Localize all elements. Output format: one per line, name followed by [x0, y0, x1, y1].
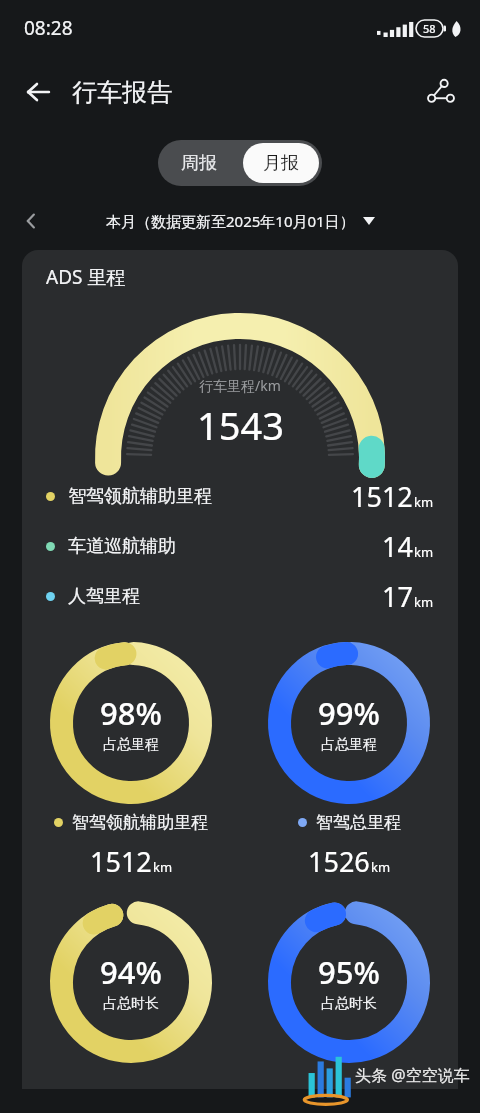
- button[interactable]: 月报: [243, 143, 319, 183]
- staticText: 占总时长: [103, 995, 159, 1013]
- staticText: 1512: [351, 478, 413, 515]
- staticText: 本月（数据更新至2025年10月01日）: [106, 211, 355, 231]
- staticText: 行车报告: [72, 77, 172, 108]
- staticText: 行车里程/km: [199, 376, 281, 395]
- staticText: 占总里程: [103, 736, 159, 754]
- staticText: 月报: [263, 152, 299, 175]
- staticText: 人驾里程: [68, 585, 140, 608]
- staticText: 94%: [100, 951, 162, 993]
- button[interactable]: 人驾里程: [22, 571, 458, 621]
- button[interactable]: 95%: [240, 894, 458, 1069]
- staticText: 智驾领航辅助里程: [72, 812, 208, 833]
- staticText: 占总时长: [321, 995, 377, 1013]
- staticText: 14: [382, 528, 413, 565]
- staticText: 58: [423, 21, 436, 36]
- staticText: km: [153, 858, 173, 876]
- button[interactable]: Back: [14, 68, 62, 116]
- staticText: ADS 里程: [46, 264, 126, 290]
- staticText: 周报: [181, 152, 217, 175]
- staticText: 头条 @空空说车: [355, 1064, 470, 1086]
- staticText: 08:28: [24, 15, 73, 41]
- staticText: km: [414, 543, 434, 561]
- button[interactable]: Previous: [14, 204, 48, 238]
- button[interactable]: 智驾总里程: [240, 812, 458, 880]
- staticText: 1512: [90, 843, 152, 880]
- staticText: 98%: [100, 692, 162, 734]
- staticText: km: [371, 858, 391, 876]
- staticText: 17: [382, 578, 413, 615]
- staticText: km: [414, 493, 434, 511]
- button[interactable]: 94%: [22, 894, 240, 1069]
- button[interactable]: 智驾领航辅助里程: [22, 812, 240, 880]
- staticText: 车道巡航辅助: [68, 535, 176, 558]
- button[interactable]: Share: [418, 69, 464, 115]
- staticText: 95%: [318, 951, 380, 993]
- staticText: 1526: [308, 843, 370, 880]
- staticText: 占总里程: [321, 736, 377, 754]
- staticText: 智驾总里程: [316, 812, 401, 833]
- staticText: 智驾领航辅助里程: [68, 485, 212, 508]
- button[interactable]: 智驾领航辅助里程: [22, 471, 458, 521]
- button[interactable]: 车道巡航辅助: [22, 521, 458, 571]
- button[interactable]: 周报: [158, 140, 240, 186]
- staticText: 99%: [318, 692, 380, 734]
- staticText: km: [414, 593, 434, 611]
- button[interactable]: 99%: [240, 635, 458, 810]
- staticText: 1543: [197, 399, 284, 451]
- button[interactable]: 本月（数据更新至2025年10月01日）: [106, 211, 375, 231]
- button[interactable]: 98%: [22, 635, 240, 810]
